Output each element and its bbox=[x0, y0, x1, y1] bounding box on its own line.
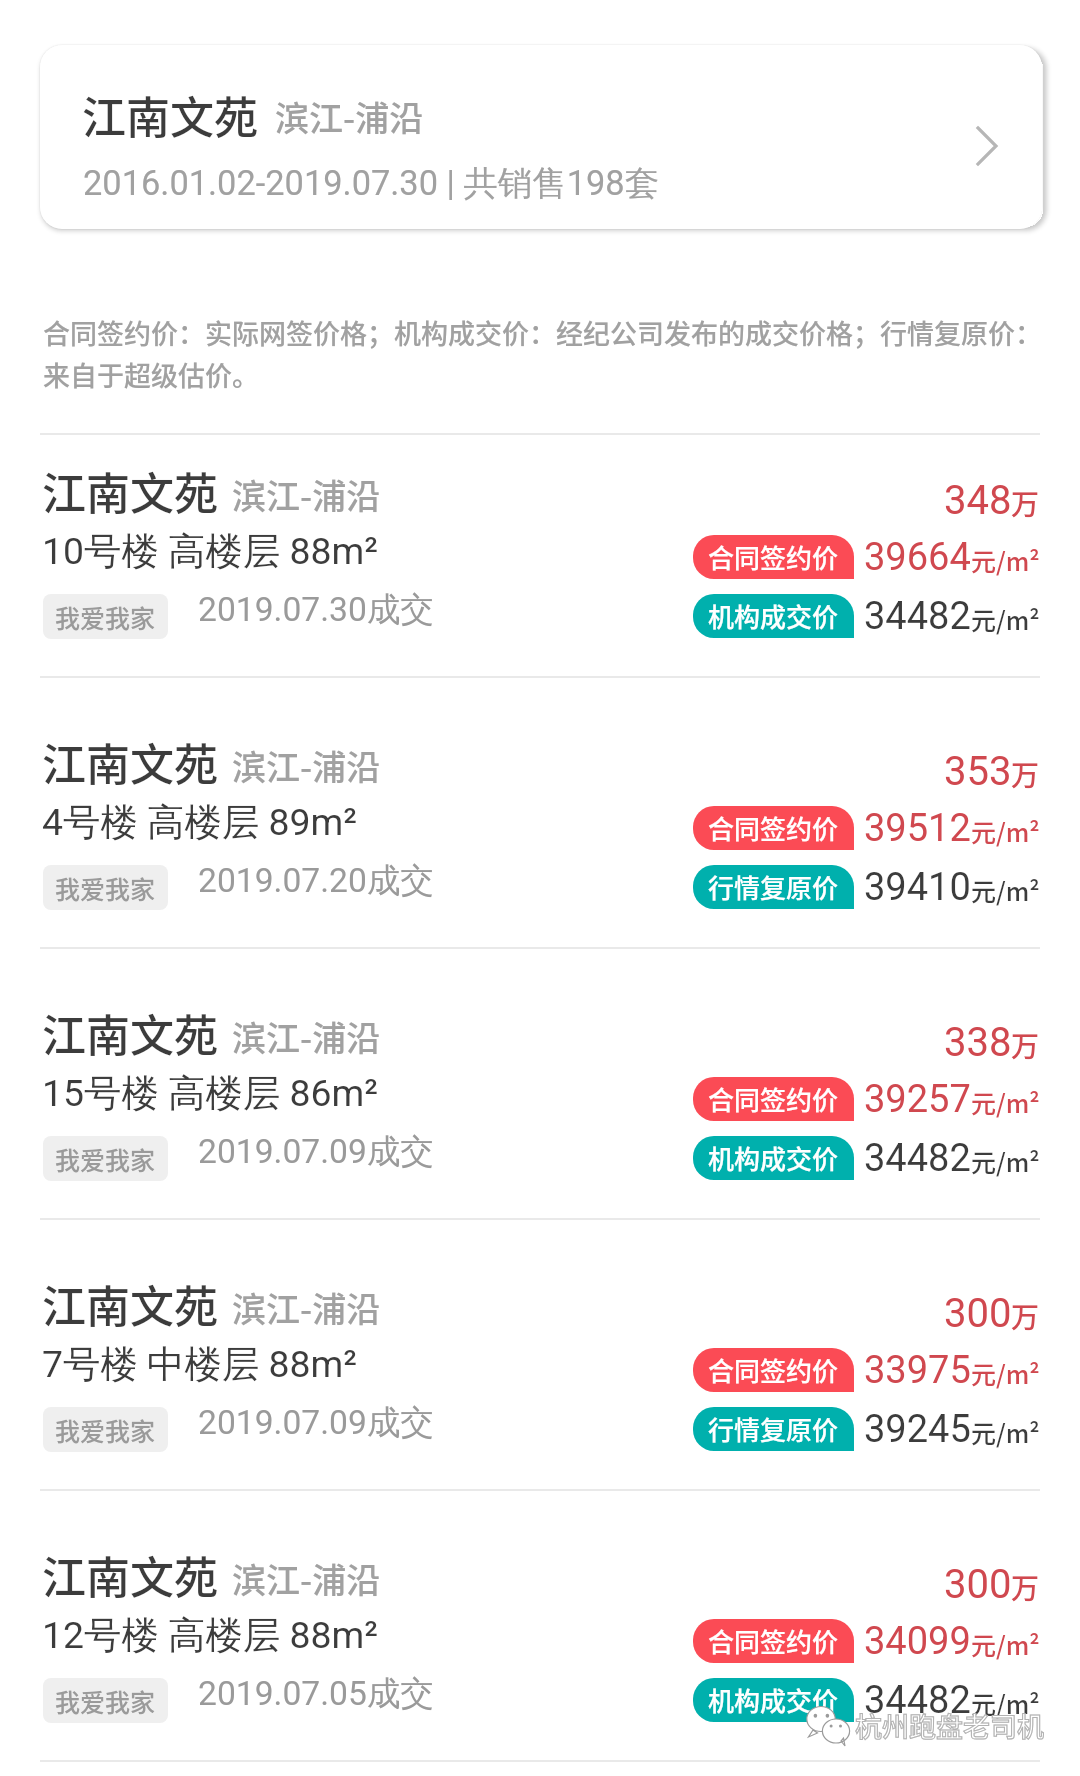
staticText: 江南文苑 bbox=[42, 1272, 218, 1336]
staticText: 我爱我家 bbox=[55, 1683, 156, 1719]
staticText: 348 bbox=[944, 477, 1012, 524]
staticText: 元/m² bbox=[971, 601, 1040, 637]
button[interactable]: 机构成交价 bbox=[693, 1136, 854, 1180]
staticText: 我爱我家 bbox=[55, 870, 156, 906]
button[interactable]: 合同签约价 bbox=[693, 535, 854, 579]
button[interactable]: 合同签约价 bbox=[693, 806, 854, 850]
button[interactable] bbox=[0, 676, 1080, 947]
staticText: 39410 bbox=[864, 865, 971, 910]
staticText: 合同签约价 bbox=[708, 538, 839, 576]
staticText: 39664 bbox=[864, 535, 971, 580]
staticText: 2019.07.09成交 bbox=[198, 1402, 434, 1444]
staticText: 滨江-浦沿 bbox=[232, 1012, 381, 1061]
button[interactable]: 机构成交价 bbox=[693, 1678, 854, 1722]
staticText: 万 bbox=[1011, 1296, 1040, 1337]
button[interactable]: 行情复原价 bbox=[693, 1407, 854, 1451]
staticText: 行情复原价 bbox=[708, 868, 839, 906]
staticText: 338 bbox=[944, 1019, 1012, 1066]
staticText: 元/m² bbox=[971, 1355, 1040, 1391]
staticText: 万 bbox=[1011, 1567, 1040, 1608]
staticText: 来自于超级估价。 bbox=[43, 355, 259, 394]
staticText: 元/m² bbox=[971, 813, 1040, 849]
button[interactable]: 我爱我家 bbox=[43, 1136, 168, 1181]
staticText: 元/m² bbox=[971, 1626, 1040, 1662]
staticText: 滨江-浦沿 bbox=[232, 1554, 381, 1603]
staticText: 15号楼 高楼层 86m² bbox=[42, 1070, 379, 1117]
staticText: 机构成交价 bbox=[708, 1681, 839, 1719]
staticText: 合同签约价 bbox=[708, 1351, 839, 1389]
staticText: 元/m² bbox=[971, 872, 1040, 908]
staticText: 元/m² bbox=[971, 1084, 1040, 1120]
staticText: 合同签约价 bbox=[708, 1622, 839, 1660]
staticText: 机构成交价 bbox=[708, 1139, 839, 1177]
staticText: 万 bbox=[1011, 1025, 1040, 1066]
button[interactable]: 我爱我家 bbox=[43, 1407, 168, 1452]
staticText: 34482 bbox=[864, 1678, 971, 1723]
staticText: 我爱我家 bbox=[55, 1412, 156, 1448]
staticText: 滨江-浦沿 bbox=[232, 470, 381, 519]
staticText: 行情复原价 bbox=[708, 1410, 839, 1448]
button[interactable]: 合同签约价 bbox=[693, 1348, 854, 1392]
button[interactable]: 机构成交价 bbox=[693, 594, 854, 638]
staticText: 杭州跑盘老司机 bbox=[855, 1706, 1044, 1745]
button[interactable]: 合同签约价 bbox=[693, 1077, 854, 1121]
staticText: 我爱我家 bbox=[55, 1141, 156, 1177]
staticText: 合同签约价：实际网签价格；机构成交价：经纪公司发布的成交价格；行情复原价： bbox=[43, 313, 1042, 352]
staticText: 元/m² bbox=[971, 1143, 1040, 1179]
staticText: 34482 bbox=[864, 1136, 971, 1181]
staticText: 杭州跑盘老司机 bbox=[855, 1706, 1044, 1745]
button[interactable]: 行情复原价 bbox=[693, 865, 854, 909]
staticText: 万 bbox=[1011, 754, 1040, 795]
button[interactable]: 查看详情 bbox=[955, 110, 1027, 182]
staticText: 4号楼 高楼层 89m² bbox=[42, 799, 358, 846]
button[interactable]: 合同签约价 bbox=[693, 1619, 854, 1663]
staticText: 江南文苑 bbox=[42, 1543, 218, 1607]
button[interactable]: 我爱我家 bbox=[43, 594, 168, 639]
staticText: 39257 bbox=[864, 1077, 971, 1122]
staticText: 39245 bbox=[864, 1407, 971, 1452]
staticText: 39512 bbox=[864, 806, 971, 851]
staticText: 元/m² bbox=[971, 1685, 1040, 1721]
staticText: 江南文苑 bbox=[42, 459, 218, 523]
button[interactable] bbox=[0, 947, 1080, 1218]
staticText: 2019.07.30成交 bbox=[198, 589, 434, 631]
staticText: 34482 bbox=[864, 594, 971, 639]
staticText: 江南文苑 bbox=[82, 83, 258, 147]
staticText: 2019.07.20成交 bbox=[198, 860, 434, 902]
staticText: 10号楼 高楼层 88m² bbox=[42, 528, 379, 575]
staticText: 300 bbox=[944, 1290, 1012, 1337]
button[interactable] bbox=[0, 405, 1080, 676]
staticText: 滨江-浦沿 bbox=[275, 92, 424, 141]
button[interactable]: 我爱我家 bbox=[43, 1678, 168, 1723]
staticText: 12号楼 高楼层 88m² bbox=[42, 1612, 379, 1659]
staticText: 合同签约价 bbox=[708, 809, 839, 847]
staticText: 2019.07.05成交 bbox=[198, 1673, 434, 1715]
staticText: 34099 bbox=[864, 1619, 971, 1664]
staticText: 2019.07.09成交 bbox=[198, 1131, 434, 1173]
button[interactable] bbox=[0, 1218, 1080, 1489]
staticText: 元/m² bbox=[971, 1414, 1040, 1450]
button[interactable] bbox=[0, 1489, 1080, 1760]
staticText: 江南文苑 bbox=[42, 1001, 218, 1065]
staticText: 机构成交价 bbox=[708, 597, 839, 635]
staticText: 33975 bbox=[864, 1348, 971, 1393]
button[interactable] bbox=[40, 45, 1042, 229]
staticText: 2016.01.02-2019.07.30 | 共销售198套 bbox=[83, 162, 660, 205]
button[interactable]: 我爱我家 bbox=[43, 865, 168, 910]
staticText: 合同签约价 bbox=[708, 1080, 839, 1118]
staticText: 滨江-浦沿 bbox=[232, 741, 381, 790]
staticText: 我爱我家 bbox=[55, 599, 156, 635]
staticText: 300 bbox=[944, 1561, 1012, 1608]
staticText: 元/m² bbox=[971, 542, 1040, 578]
staticText: 江南文苑 bbox=[42, 730, 218, 794]
staticText: 万 bbox=[1011, 483, 1040, 524]
staticText: 353 bbox=[944, 748, 1012, 795]
staticText: 7号楼 中楼层 88m² bbox=[42, 1341, 358, 1388]
staticText: 滨江-浦沿 bbox=[232, 1283, 381, 1332]
